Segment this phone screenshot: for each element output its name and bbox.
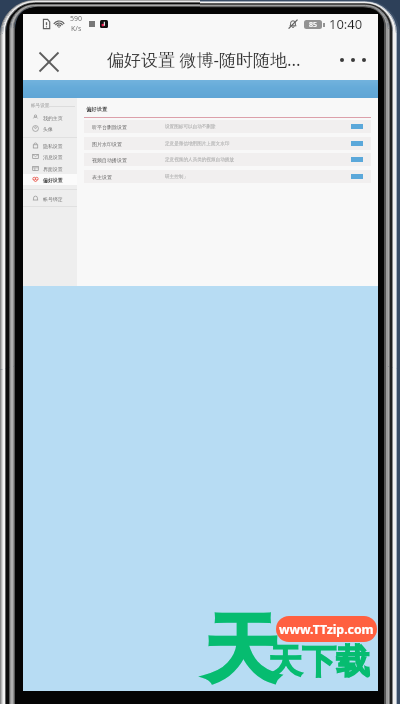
staticText: 研主控制」 [165,174,188,180]
button[interactable]: More options [329,46,377,74]
staticText: 天下载 [268,640,370,683]
staticText: 帐号设置 [31,103,50,109]
staticText: 590 [70,14,83,24]
staticText: 偏好设置 微博-随时随地... [107,48,301,71]
button[interactable]: 消息设置 [23,151,77,162]
button[interactable]: 帐号绑定 [23,193,77,204]
button[interactable]: Close [33,46,65,78]
staticText: 头像 [43,126,53,132]
button[interactable]: 隐私设置 [23,140,77,151]
staticText: 帐号绑定 [43,196,63,202]
staticText: 表主设置 [92,174,112,180]
staticText: 10:40 [329,15,363,33]
staticText: 偏好设置 [43,177,63,183]
staticText: K/s [71,24,82,34]
staticText: 设置图标可以自动不删除 [165,124,216,130]
button[interactable]: 头像 [23,123,77,134]
staticText: 定意是微信增用图片上面文水印 [165,141,230,147]
staticText: 偏好设置 [86,106,108,113]
button[interactable]: 听平台删除设置 [84,120,371,133]
button[interactable]: 界面设置 [23,163,77,174]
staticText: 听平台删除设置 [92,124,127,130]
button[interactable]: 表主设置 [84,170,371,183]
button[interactable]: 图片水印设置 [84,137,371,150]
staticText: 视频自动播设置 [92,157,127,163]
staticText: 消息设置 [43,154,63,160]
staticText: 85 [309,20,318,29]
button[interactable]: 偏好设置 [23,174,77,185]
staticText: 我的主页 [43,115,63,121]
staticText: 图片水印设置 [92,141,122,147]
button[interactable]: 我的主页 [23,112,77,123]
staticText: 定意视频的人员类的视频自动播放 [165,157,234,163]
staticText: 隐私设置 [43,143,63,149]
staticText: www.TTzip.com [279,621,374,638]
button[interactable]: 视频自动播设置 [84,153,371,166]
staticText: 天 [204,603,279,697]
staticText: 界面设置 [43,166,63,172]
